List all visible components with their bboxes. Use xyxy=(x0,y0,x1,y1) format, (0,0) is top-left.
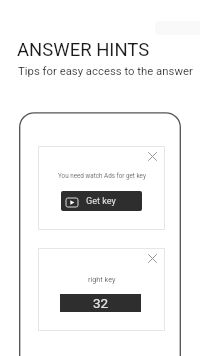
staticText: right key xyxy=(88,275,116,284)
staticText: Get key xyxy=(86,196,116,207)
staticText: ANSWER HINTS xyxy=(17,39,150,61)
button[interactable]: 32 xyxy=(60,294,141,312)
button[interactable]: Get key xyxy=(61,191,142,211)
staticText: Tips for easy access to the answer xyxy=(18,64,193,77)
button[interactable]: Close xyxy=(148,152,157,161)
button[interactable]: Close xyxy=(148,254,157,263)
staticText: 32 xyxy=(93,295,109,311)
staticText: You need watch Ads for get key xyxy=(58,172,146,179)
